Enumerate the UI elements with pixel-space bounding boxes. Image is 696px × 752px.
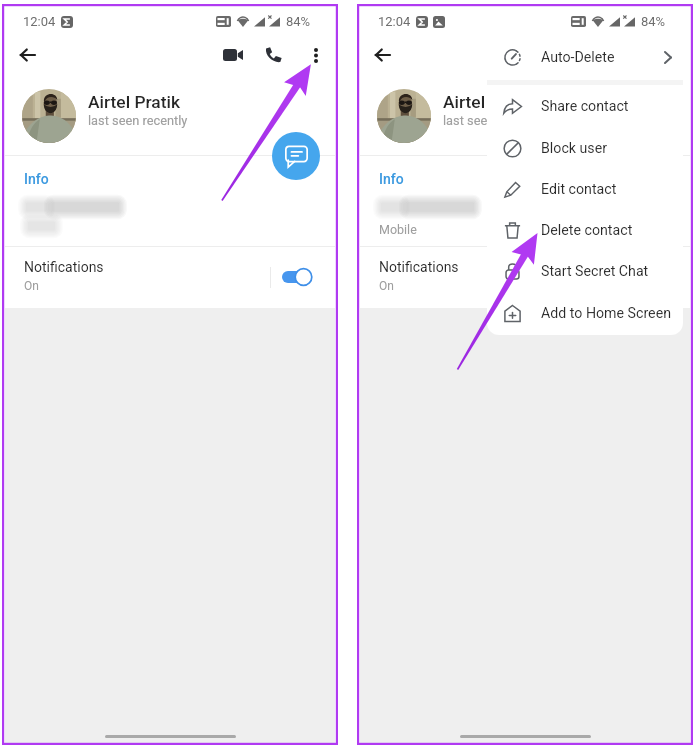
staticText: 12:04 <box>378 14 411 29</box>
button[interactable]: Video call <box>572 39 604 71</box>
staticText: Info <box>24 171 49 187</box>
staticText: Notifications <box>379 259 459 275</box>
button[interactable]: Delete contact <box>487 210 683 251</box>
button[interactable]: More options <box>655 39 687 71</box>
staticText: Block user <box>541 140 607 157</box>
button[interactable]: Video call <box>217 39 249 71</box>
staticText: 12:04 <box>23 14 56 29</box>
button[interactable]: New message <box>272 132 320 180</box>
button[interactable]: Back <box>9 37 45 73</box>
button[interactable]: More options <box>300 39 332 71</box>
button[interactable]: Notifications toggle <box>282 264 320 290</box>
button[interactable]: Start Secret Chat <box>487 251 683 292</box>
button[interactable]: Notifications <box>5 247 335 308</box>
button[interactable]: Block user <box>487 127 683 169</box>
staticText: Add to Home Screen <box>541 305 671 322</box>
staticText: Airtel Pratik <box>88 92 181 112</box>
button[interactable]: Share contact <box>487 85 683 127</box>
staticText: On <box>379 279 394 293</box>
button[interactable]: Back <box>364 37 400 73</box>
staticText: Info <box>379 171 404 187</box>
staticText: Auto-Delete <box>541 49 615 66</box>
staticText: Delete contact <box>541 222 633 239</box>
staticText: Start Secret Chat <box>541 263 649 280</box>
staticText: Notifications <box>24 259 104 275</box>
button[interactable]: Edit contact <box>487 169 683 210</box>
button[interactable]: Notifications toggle <box>637 264 675 290</box>
button[interactable]: Call <box>257 39 289 71</box>
staticText: Edit contact <box>541 181 617 198</box>
staticText: On <box>24 279 39 293</box>
staticText: Airtel Pratik <box>443 92 536 112</box>
button[interactable]: Airtel Pratik <box>5 77 335 154</box>
button[interactable]: Add to Home Screen <box>487 292 683 334</box>
staticText: 84% <box>286 14 311 29</box>
staticText: 84% <box>641 14 666 29</box>
staticText: last seen recently <box>443 113 543 128</box>
button[interactable]: Auto-Delete <box>487 35 683 80</box>
button[interactable]: Call <box>612 39 644 71</box>
staticText: Mobile <box>379 222 417 237</box>
staticText: Share contact <box>541 98 629 115</box>
button[interactable]: Airtel Pratik <box>360 77 690 154</box>
button[interactable]: Notifications <box>360 247 690 308</box>
staticText: last seen recently <box>88 113 188 128</box>
